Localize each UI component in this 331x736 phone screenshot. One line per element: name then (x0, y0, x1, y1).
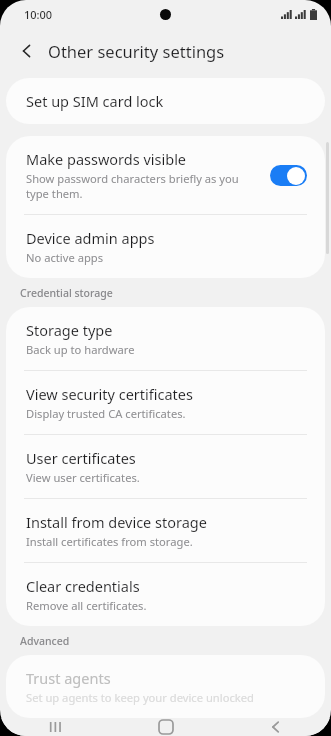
staticText: Set up agents to keep your device unlock… (26, 690, 254, 705)
staticText: Device admin apps (26, 228, 155, 248)
button[interactable]: Set up SIM card lock (6, 78, 325, 124)
button[interactable]: View security certificates (6, 371, 325, 434)
button[interactable]: Storage type (6, 307, 325, 370)
button[interactable]: Make passwords visible (6, 136, 325, 214)
button[interactable]: Make passwords visible toggle (270, 165, 307, 186)
staticText: Credential storage (20, 286, 113, 300)
staticText: View security certificates (26, 384, 193, 404)
button[interactable]: User certificates (6, 435, 325, 498)
staticText: Clear credentials (26, 576, 140, 596)
button[interactable]: Clear credentials (6, 563, 325, 626)
staticText: Storage type (26, 320, 113, 340)
staticText: Show password characters briefly as you … (26, 171, 260, 201)
staticText: Other security settings (48, 40, 225, 62)
button[interactable]: Back (9, 33, 45, 69)
staticText: Advanced (20, 634, 70, 648)
button[interactable]: Back (221, 718, 331, 736)
staticText: Install certificates from storage. (26, 534, 193, 549)
button[interactable]: Device admin apps (6, 215, 325, 278)
staticText: Set up SIM card lock (26, 91, 164, 111)
button[interactable]: Trust agents (6, 655, 325, 718)
staticText: Make passwords visible (26, 149, 187, 169)
button[interactable]: Install from device storage (6, 499, 325, 562)
staticText: Remove all certificates. (26, 598, 147, 613)
staticText: Trust agents (26, 668, 111, 688)
staticText: Install from device storage (26, 512, 207, 532)
staticText: Back up to hardware (26, 342, 135, 357)
staticText: 10:00 (24, 7, 53, 22)
staticText: View user certificates. (26, 470, 140, 485)
staticText: No active apps (26, 250, 104, 265)
staticText: User certificates (26, 448, 136, 468)
staticText: Display trusted CA certificates. (26, 406, 186, 421)
button[interactable]: Recents (0, 718, 111, 736)
button[interactable]: Home (111, 718, 221, 736)
